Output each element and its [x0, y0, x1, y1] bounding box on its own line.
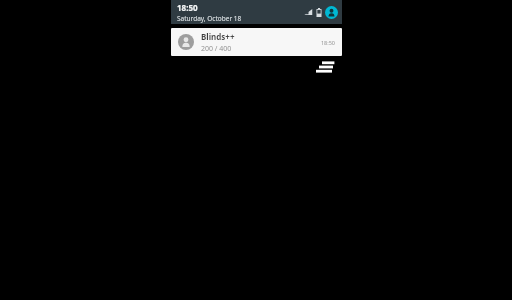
staticText: 18:50 — [320, 39, 335, 46]
other: Signal — [304, 8, 313, 17]
other: Battery — [316, 8, 322, 17]
staticText: Saturday, October 18 — [177, 14, 242, 23]
button[interactable]: Account — [325, 6, 338, 19]
staticText: 200 / 400 — [201, 44, 232, 54]
button[interactable]: Recent apps — [316, 60, 336, 74]
button[interactable]: Blinds++ — [171, 28, 342, 56]
staticText: 18:50 — [177, 2, 198, 13]
staticText: Blinds++ — [201, 31, 235, 42]
